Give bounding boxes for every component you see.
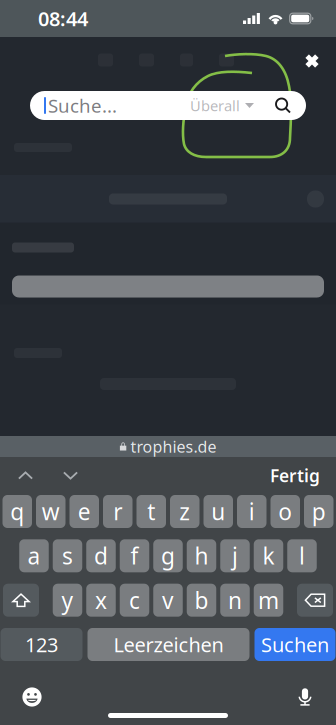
- staticText: m: [258, 585, 279, 615]
- staticText: l: [299, 541, 305, 571]
- button[interactable]: s: [53, 539, 82, 572]
- button[interactable]: Fertig: [265, 456, 325, 495]
- button[interactable]: r: [103, 495, 132, 528]
- staticText: u: [211, 496, 225, 526]
- button[interactable]: p: [304, 495, 333, 528]
- staticText: h: [194, 541, 208, 571]
- button[interactable]: b: [187, 584, 216, 617]
- staticText: a: [27, 541, 40, 571]
- staticText: f: [130, 541, 138, 571]
- button[interactable]: e: [69, 495, 99, 528]
- button[interactable]: v: [153, 584, 183, 617]
- staticText: d: [94, 541, 108, 571]
- button[interactable]: u: [203, 495, 233, 528]
- button[interactable]: t: [136, 495, 166, 528]
- button[interactable]: g: [153, 539, 183, 572]
- button[interactable]: a: [19, 539, 49, 572]
- button[interactable]: i: [237, 495, 266, 528]
- button[interactable]: c: [120, 584, 149, 617]
- staticText: Leerzeichen: [113, 631, 223, 658]
- button[interactable]: j: [220, 539, 250, 572]
- staticText: c: [129, 585, 140, 615]
- staticText: r: [113, 496, 122, 526]
- staticText: Fertig: [270, 464, 320, 487]
- staticText: Suche...: [48, 93, 117, 118]
- button[interactable]: q: [2, 495, 32, 528]
- staticText: t: [147, 496, 155, 526]
- button[interactable]: trophies.de: [0, 436, 336, 457]
- staticText: Suchen: [261, 631, 329, 658]
- button[interactable]: Umschalt: [3, 584, 39, 617]
- button[interactable]: Suchen: [254, 628, 335, 661]
- staticText: trophies.de: [130, 436, 216, 457]
- button[interactable]: Emoji: [11, 676, 53, 718]
- button[interactable]: 123: [0, 628, 82, 661]
- staticText: x: [95, 585, 107, 615]
- button[interactable]: m: [254, 584, 283, 617]
- button[interactable]: Nächstes Feld: [54, 462, 87, 488]
- button[interactable]: Schließen: [295, 44, 329, 78]
- staticText: Überall: [190, 96, 240, 115]
- staticText: o: [278, 496, 292, 526]
- button[interactable]: Leerzeichen: [87, 628, 249, 661]
- button[interactable]: y: [53, 584, 82, 617]
- button[interactable]: Diktieren: [285, 676, 325, 718]
- button[interactable]: k: [254, 539, 283, 572]
- staticText: 08:44: [38, 5, 88, 32]
- staticText: p: [312, 496, 326, 526]
- button[interactable]: z: [170, 495, 199, 528]
- button[interactable]: Vorheriges Feld: [9, 462, 42, 488]
- staticText: 123: [25, 631, 58, 658]
- staticText: v: [162, 585, 174, 615]
- staticText: k: [262, 541, 274, 571]
- button[interactable]: Suche...: [30, 91, 306, 120]
- button[interactable]: h: [187, 539, 216, 572]
- button[interactable]: x: [86, 584, 116, 617]
- staticText: b: [194, 585, 208, 615]
- staticText: q: [10, 496, 24, 526]
- button[interactable]: Löschen: [297, 584, 333, 617]
- staticText: e: [78, 496, 91, 526]
- button[interactable]: n: [220, 584, 250, 617]
- staticText: z: [179, 496, 190, 526]
- staticText: g: [161, 541, 175, 571]
- staticText: y: [61, 585, 73, 615]
- staticText: n: [228, 585, 242, 615]
- button[interactable]: d: [86, 539, 116, 572]
- staticText: s: [62, 541, 73, 571]
- button[interactable]: f: [120, 539, 149, 572]
- staticText: j: [232, 541, 238, 571]
- button[interactable]: l: [287, 539, 317, 572]
- staticText: w: [42, 496, 60, 526]
- staticText: i: [249, 496, 255, 526]
- button[interactable]: o: [270, 495, 300, 528]
- button[interactable]: w: [36, 495, 65, 528]
